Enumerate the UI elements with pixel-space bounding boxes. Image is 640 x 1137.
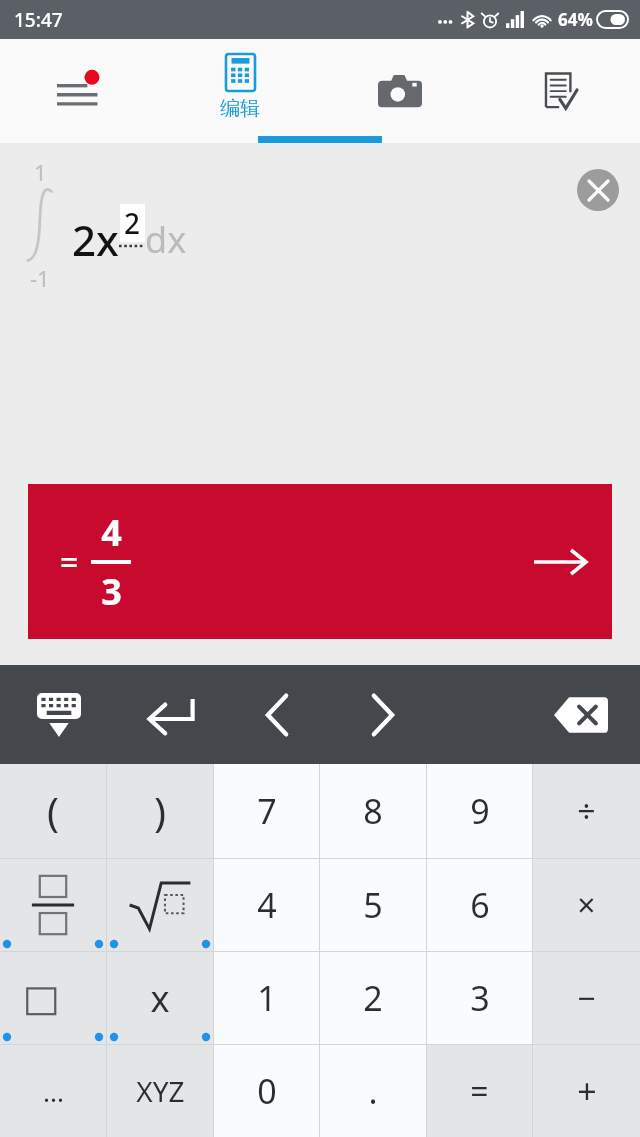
staticText: 1 (257, 975, 277, 1021)
button[interactable]: Hide keyboard (0, 665, 118, 764)
button[interactable]: Camera (320, 39, 480, 143)
button[interactable]: 3 (427, 952, 532, 1044)
button[interactable]: 7 (214, 764, 319, 858)
button[interactable]: + (533, 1045, 640, 1137)
staticText: 7 (257, 788, 277, 834)
staticText: 3 (470, 975, 490, 1021)
button[interactable]: XYZ (107, 1045, 213, 1137)
staticText: x (150, 974, 170, 1023)
staticText: 2 (363, 975, 383, 1021)
staticText: ... (43, 1074, 64, 1109)
button[interactable]: 2 (320, 952, 426, 1044)
staticText: -1 (30, 263, 50, 293)
staticText: ÷ (577, 789, 596, 833)
staticText: 15:47 (14, 7, 63, 33)
button[interactable]: 4 (214, 859, 319, 951)
staticText: 编辑 (220, 96, 260, 121)
button[interactable]: 0 (214, 1045, 319, 1137)
button[interactable]: − (533, 952, 640, 1044)
staticText: ( (47, 784, 59, 838)
button[interactable] (0, 952, 106, 1044)
staticText: . (368, 1068, 378, 1114)
button[interactable]: 5 (320, 859, 426, 951)
staticText: 2x (72, 211, 119, 268)
staticText: 2 (124, 204, 141, 242)
staticText: 4 (257, 882, 277, 928)
button[interactable]: 8 (320, 764, 426, 858)
staticText: 8 (363, 788, 383, 834)
staticText: 0 (257, 1068, 277, 1114)
button[interactable]: = (28, 484, 612, 639)
button[interactable]: Enter (118, 665, 224, 764)
staticText: 1 (34, 157, 47, 187)
staticText: + (577, 1068, 597, 1114)
button[interactable]: 1 (214, 952, 319, 1044)
button[interactable]: 编辑 (160, 39, 320, 143)
staticText: 5 (363, 882, 383, 928)
button[interactable]: ÷ (533, 764, 640, 858)
staticText: ) (154, 784, 166, 838)
button[interactable]: Menu (0, 39, 160, 143)
staticText: 3 (101, 567, 122, 616)
staticText: × (577, 883, 596, 927)
button[interactable]: Move cursor left (224, 665, 330, 764)
button[interactable]: History (480, 39, 640, 143)
button[interactable]: ( (0, 764, 106, 858)
button[interactable]: 6 (427, 859, 532, 951)
button[interactable]: 9 (427, 764, 532, 858)
button[interactable]: . (320, 1045, 426, 1137)
staticText: 4 (101, 508, 122, 557)
button[interactable]: Clear expression (577, 169, 619, 211)
staticText: − (577, 976, 596, 1020)
staticText: = (60, 540, 79, 584)
staticText: 6 (470, 882, 490, 928)
button[interactable]: × (533, 859, 640, 951)
button[interactable] (107, 859, 213, 951)
staticText: 64% (558, 8, 593, 31)
staticText: dx (145, 215, 187, 264)
button[interactable]: Next step (530, 542, 590, 582)
button[interactable]: Backspace (522, 665, 640, 764)
button[interactable]: = (427, 1045, 532, 1137)
staticText: XYZ (136, 1072, 185, 1110)
staticText: = (470, 1069, 489, 1113)
button[interactable] (0, 859, 106, 951)
staticText: 9 (470, 788, 490, 834)
button[interactable]: x (107, 952, 213, 1044)
button[interactable]: ) (107, 764, 213, 858)
button[interactable]: Move cursor right (330, 665, 436, 764)
button[interactable]: ... (0, 1045, 106, 1137)
